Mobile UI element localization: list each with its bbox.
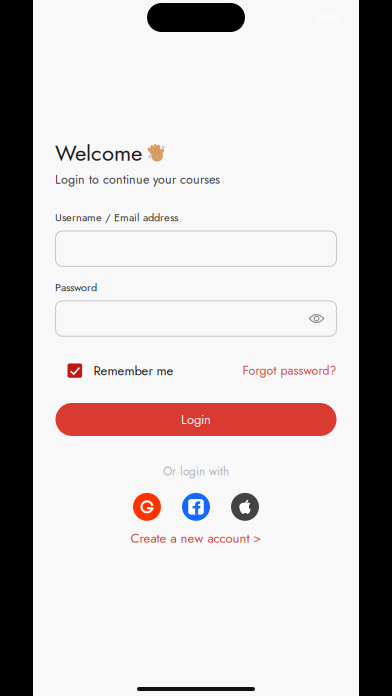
staticText: Or login with xyxy=(163,463,229,480)
button[interactable]: Continue with Apple xyxy=(231,493,259,521)
staticText: Remember me xyxy=(94,361,174,380)
staticText: Create a new account xyxy=(130,529,249,548)
staticText: Login xyxy=(181,410,211,429)
staticText: Welcome xyxy=(55,137,142,169)
staticText: > xyxy=(253,530,261,547)
staticText: Login to continue your courses xyxy=(55,170,220,188)
button[interactable]: Forgot password? xyxy=(242,362,336,379)
button[interactable]: Remember me xyxy=(55,361,174,380)
staticText: Password xyxy=(55,279,97,295)
staticText: Username / Email address xyxy=(55,210,178,225)
button[interactable]: Show password xyxy=(298,302,336,336)
button[interactable]: Create a new account xyxy=(130,529,261,548)
button[interactable]: Continue with Facebook xyxy=(182,493,210,521)
staticText: Forgot password? xyxy=(242,362,336,379)
button[interactable]: Continue with Google xyxy=(133,493,161,521)
button[interactable]: Login xyxy=(55,403,336,436)
